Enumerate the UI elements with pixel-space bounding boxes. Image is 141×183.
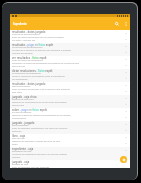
staticText: consultar el expediente asociado a la ca… [12, 153, 67, 156]
button[interactable]: Row options [123, 136, 129, 145]
staticText: saldo [12, 143, 18, 146]
staticText: expediente de caja [12, 150, 32, 153]
staticText: la fecha de documentacion [12, 33, 40, 36]
staticText: sobre - pago en fisico expdt [12, 108, 47, 112]
button[interactable]: juzgado - caja [10, 160, 130, 168]
staticText: juzgado - caja [12, 160, 30, 164]
staticText: listar los juzgados con caja asignada [12, 166, 50, 168]
staticText: resultados - pago en fisico expdt [12, 43, 53, 47]
button[interactable]: resultados - datos juzgado [10, 30, 130, 43]
staticText: listar los juzgados disponibles y sus da… [12, 127, 68, 130]
staticText: dictar resoluciones - fisico expdt [12, 69, 53, 73]
staticText: juzgado de caja [12, 163, 28, 166]
staticText: libro - caja [12, 134, 25, 138]
button[interactable]: Row options [123, 71, 129, 80]
button[interactable]: sobre - pago en fisico expdt [10, 108, 130, 121]
button[interactable]: Add [120, 156, 127, 163]
staticText: el pago en efectivo [12, 111, 32, 114]
staticText: nombre del juzgado [12, 52, 33, 55]
staticText: la resolucion del expediente [12, 72, 41, 75]
staticText: juzgado - caja chica [12, 95, 37, 99]
staticText: resultados - datos juzgado [12, 30, 46, 34]
staticText: caja chica [12, 91, 22, 94]
staticText: registro de caja chica [12, 98, 34, 101]
staticText: datos del juzgado [12, 85, 31, 88]
button[interactable]: Row options [123, 110, 129, 119]
staticText: registrar los movimientos de la caja chi… [12, 101, 67, 104]
button[interactable]: Row options [123, 162, 129, 168]
button[interactable]: Row options [123, 149, 129, 158]
button[interactable]: Row options [123, 32, 129, 41]
staticText: monto total [12, 104, 25, 107]
staticText: listar los datos del expediente [12, 59, 43, 62]
staticText: dictar la resolucion del juzgado sobre e… [12, 75, 65, 78]
staticText: libro de caja [12, 137, 25, 140]
staticText: resultados - datos juzgado [12, 82, 46, 86]
staticText: la persona de documentacion [12, 46, 43, 49]
button[interactable]: More options [122, 20, 130, 28]
staticText: los datos / nombre apl [12, 39, 36, 42]
button[interactable]: expediente - caja [10, 147, 130, 160]
button[interactable]: Row options [123, 58, 129, 67]
staticText: listar los datos personales mas la perso… [12, 36, 64, 39]
button[interactable]: Row options [123, 123, 129, 132]
button[interactable]: Row options [123, 45, 129, 54]
staticText: numero [12, 156, 21, 159]
staticText: presentar los datos del expediente del j… [12, 62, 80, 65]
button[interactable]: libro - caja [10, 134, 130, 147]
staticText: direccion [12, 130, 22, 133]
button[interactable]: Row options [123, 84, 129, 93]
staticText: ver resultados - fisico expdt [12, 56, 47, 60]
button[interactable]: resultados - datos juzgado [10, 82, 130, 95]
staticText: juzgado - juzgado [12, 121, 35, 125]
staticText: fecha de hoy [12, 65, 26, 68]
button[interactable]: dictar resoluciones - fisico expdt [10, 69, 130, 82]
button[interactable]: juzgado - juzgado [10, 121, 130, 134]
staticText: registrar el pago en efectivo del expedi… [12, 114, 71, 117]
button[interactable]: ver resultados - fisico expdt [10, 56, 130, 69]
staticText: comprobante [12, 117, 26, 120]
staticText: el pago de la persona en efectivo que pr… [12, 49, 72, 52]
button[interactable]: Row options [123, 97, 129, 106]
staticText: datos generales [12, 124, 29, 127]
button[interactable]: juzgado - caja chica [10, 95, 130, 108]
button[interactable]: Search [112, 19, 122, 29]
staticText: Expediente [13, 22, 27, 26]
staticText: nro expediente [12, 78, 28, 81]
staticText: registrar las entradas y salidas del lib… [12, 140, 60, 143]
staticText: listar los datos del juzgado y de la per… [12, 88, 70, 91]
button[interactable]: resultados - pago en fisico expdt [10, 43, 130, 56]
staticText: expediente - caja [12, 147, 34, 151]
